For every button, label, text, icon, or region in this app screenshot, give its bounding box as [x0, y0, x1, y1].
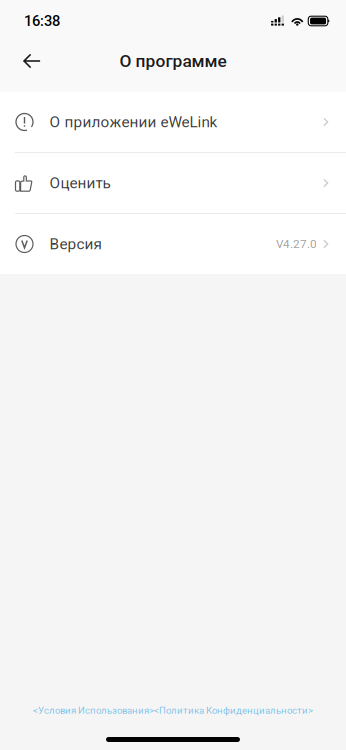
button[interactable]: <Условия Использования>	[33, 705, 154, 716]
staticText: 16:38	[24, 12, 60, 30]
button[interactable]: О приложении eWeLink	[0, 92, 346, 152]
staticText: Версия	[49, 235, 101, 253]
button[interactable]: Версия	[0, 214, 346, 274]
staticText: <Политика Конфиденциальности>	[154, 705, 313, 716]
staticText: <Условия Использования>	[33, 705, 154, 716]
button[interactable]: <Политика Конфиденциальности>	[154, 705, 313, 716]
staticText: О программе	[119, 51, 226, 71]
button[interactable]: Оценить	[0, 153, 346, 213]
staticText: V4.27.0	[276, 237, 317, 251]
button[interactable]: Назад	[10, 42, 54, 80]
staticText: Оценить	[49, 174, 110, 192]
staticText: О приложении eWeLink	[49, 113, 217, 131]
